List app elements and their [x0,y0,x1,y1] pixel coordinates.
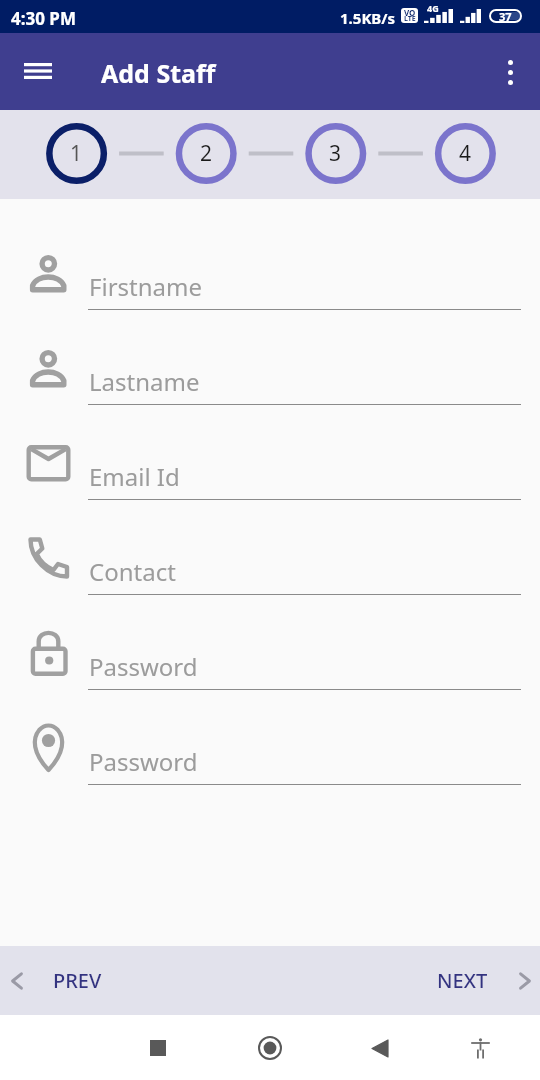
staticText: Lastname [89,365,200,398]
button[interactable]: PREV [0,946,126,1015]
staticText: 4G [427,2,439,14]
staticText: Firstname [89,270,202,303]
staticText: Add Staff [101,56,216,90]
staticText: PREV [53,967,102,994]
button[interactable]: Home [246,1024,294,1072]
staticText: 1.5KB/s [340,8,396,28]
staticText: Contact [89,555,176,588]
staticText: 2 [200,139,213,168]
button[interactable]: Back [356,1024,404,1072]
button[interactable]: 3 [305,123,366,184]
button[interactable]: Accessibility [456,1024,504,1072]
staticText: VO [404,8,416,18]
button[interactable]: 2 [176,123,237,184]
button[interactable]: 1 [46,123,107,184]
button[interactable]: Open navigation menu [14,47,62,95]
button[interactable]: Password [0,730,540,825]
button[interactable]: Password [0,635,540,730]
staticText: 4 [459,139,472,168]
staticText: NEXT [437,967,488,994]
button[interactable]: 4 [435,123,496,184]
staticText: Password [89,650,198,683]
staticText: Email Id [89,460,180,493]
staticText: 4:30 PM [11,7,76,30]
button[interactable]: Recent apps [134,1024,182,1072]
staticText: LTE [404,14,416,23]
staticText: Password [89,745,198,778]
staticText: 1 [70,139,83,168]
staticText: 3 [329,139,342,168]
button[interactable]: More options [486,48,534,96]
button[interactable]: Email Id [0,445,540,540]
staticText: 37 [499,9,512,23]
button[interactable]: Lastname [0,350,540,445]
button[interactable]: NEXT [413,946,540,1015]
button[interactable]: Firstname [0,255,540,350]
button[interactable]: Contact [0,540,540,635]
